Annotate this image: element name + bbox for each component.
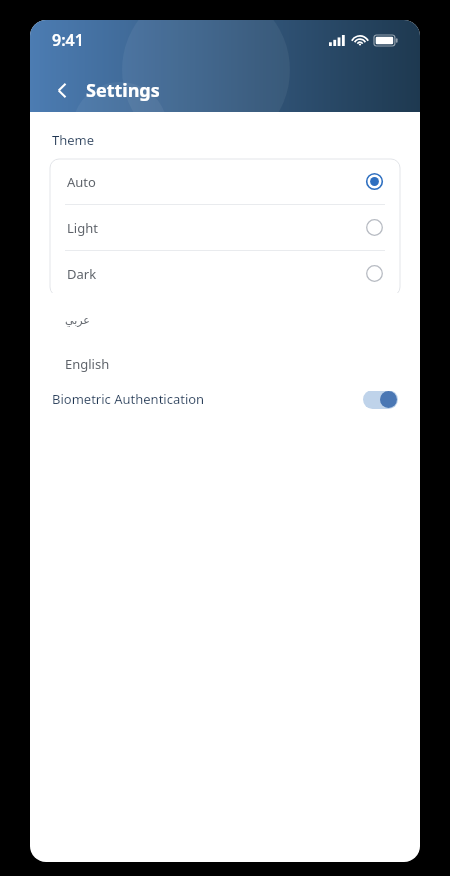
- button[interactable]: Back: [44, 72, 80, 108]
- button[interactable]: عربي: [48, 298, 410, 342]
- staticText: Auto: [67, 173, 96, 191]
- button[interactable]: Biometric Authentication: [30, 383, 420, 415]
- button[interactable]: Notifications: [30, 321, 420, 353]
- staticText: عربي: [65, 314, 90, 327]
- staticText: 9:41: [52, 29, 84, 51]
- button[interactable]: Light: [50, 205, 400, 250]
- staticText: Light: [67, 219, 98, 237]
- button[interactable]: Dark: [50, 251, 400, 296]
- staticText: Dark: [67, 265, 97, 283]
- button[interactable]: English: [48, 342, 410, 386]
- staticText: Theme: [52, 131, 95, 149]
- staticText: English: [65, 355, 110, 373]
- button[interactable]: Auto: [50, 159, 400, 204]
- staticText: Biometric Authentication: [52, 390, 205, 408]
- staticText: Settings: [86, 78, 160, 103]
